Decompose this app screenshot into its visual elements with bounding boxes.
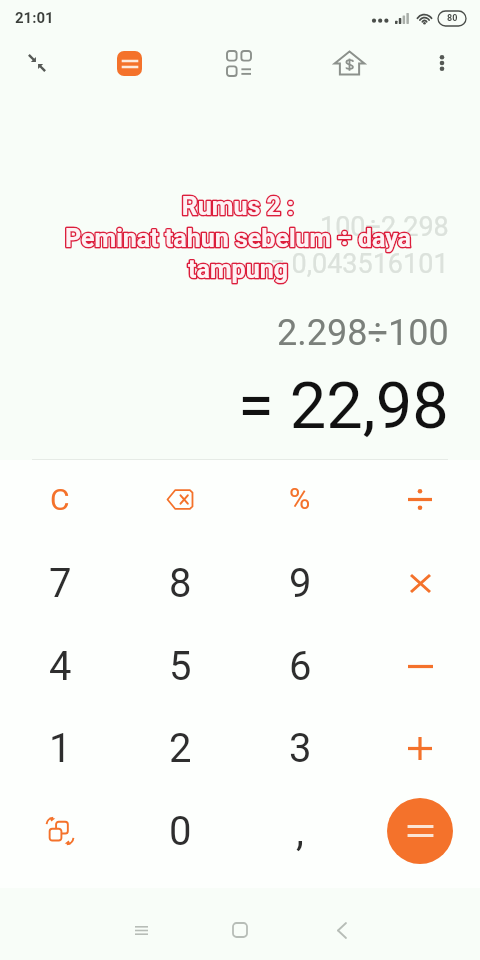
staticText: 4 [49, 643, 72, 690]
button[interactable]: 5 [130, 625, 230, 707]
button[interactable]: Divide [370, 458, 470, 540]
staticText: Rumus 2 : Peminat tahun sebelum ÷ daya t… [0, 192, 478, 284]
button[interactable]: 9 [250, 542, 350, 624]
staticText: Rumus 2 : Peminat tahun sebelum ÷ daya t… [0, 192, 478, 284]
button[interactable]: 0 [130, 790, 230, 872]
button[interactable]: Calculator [107, 39, 151, 87]
button[interactable]: 2 [130, 707, 230, 789]
staticText: C [50, 482, 70, 517]
staticText: 9 [289, 560, 312, 607]
button[interactable]: Backspace [130, 458, 230, 540]
button[interactable]: C [10, 458, 110, 540]
staticText: 3 [289, 725, 312, 772]
button[interactable]: Unit converter [10, 790, 110, 872]
button[interactable]: 1 [10, 707, 110, 789]
staticText: 1 [49, 725, 72, 772]
staticText: = 22,98 [238, 368, 449, 444]
staticText: 7 [49, 560, 72, 607]
staticText: 8 [169, 560, 192, 607]
button[interactable]: Back [315, 904, 367, 956]
staticText: 0 [169, 808, 192, 855]
staticText: , [296, 808, 304, 855]
button[interactable]: Plus [370, 707, 470, 789]
staticText: 80 [447, 13, 458, 24]
button[interactable]: More options [422, 39, 462, 87]
button[interactable]: , [250, 790, 350, 872]
staticText: 2.298÷100 [277, 312, 449, 354]
button[interactable]: Equals [387, 798, 453, 864]
button[interactable]: 8 [130, 542, 230, 624]
staticText: 100÷2.298 [320, 211, 449, 243]
button[interactable]: Tools [217, 39, 261, 87]
staticText: 5 [169, 643, 192, 690]
staticText: % [289, 482, 311, 516]
staticText: 6 [289, 643, 312, 690]
button[interactable]: 3 [250, 707, 350, 789]
button[interactable]: 4 [10, 625, 110, 707]
button[interactable]: Collapse [15, 39, 59, 87]
button[interactable]: Recents [115, 904, 167, 956]
button[interactable]: Home [214, 904, 266, 956]
staticText: = 0,043516101 [270, 248, 449, 280]
button[interactable]: 6 [250, 625, 350, 707]
staticText: 2 [169, 725, 192, 772]
button[interactable]: Mortgage calculator [325, 39, 373, 87]
button[interactable]: % [250, 458, 350, 540]
staticText: 21:01 [15, 9, 54, 27]
button[interactable]: Minus [370, 625, 470, 707]
button[interactable]: Multiply [370, 542, 470, 624]
button[interactable]: 7 [10, 542, 110, 624]
